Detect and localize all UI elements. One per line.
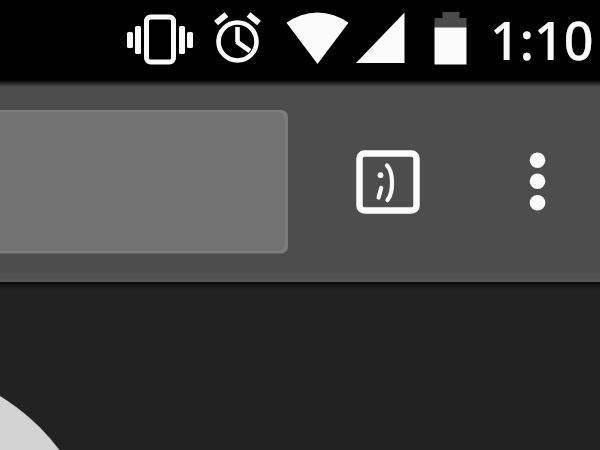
button[interactable]: Insert emoticon: [345, 140, 431, 224]
button[interactable]: More options: [506, 129, 569, 234]
staticText: 1:10: [490, 4, 594, 75]
